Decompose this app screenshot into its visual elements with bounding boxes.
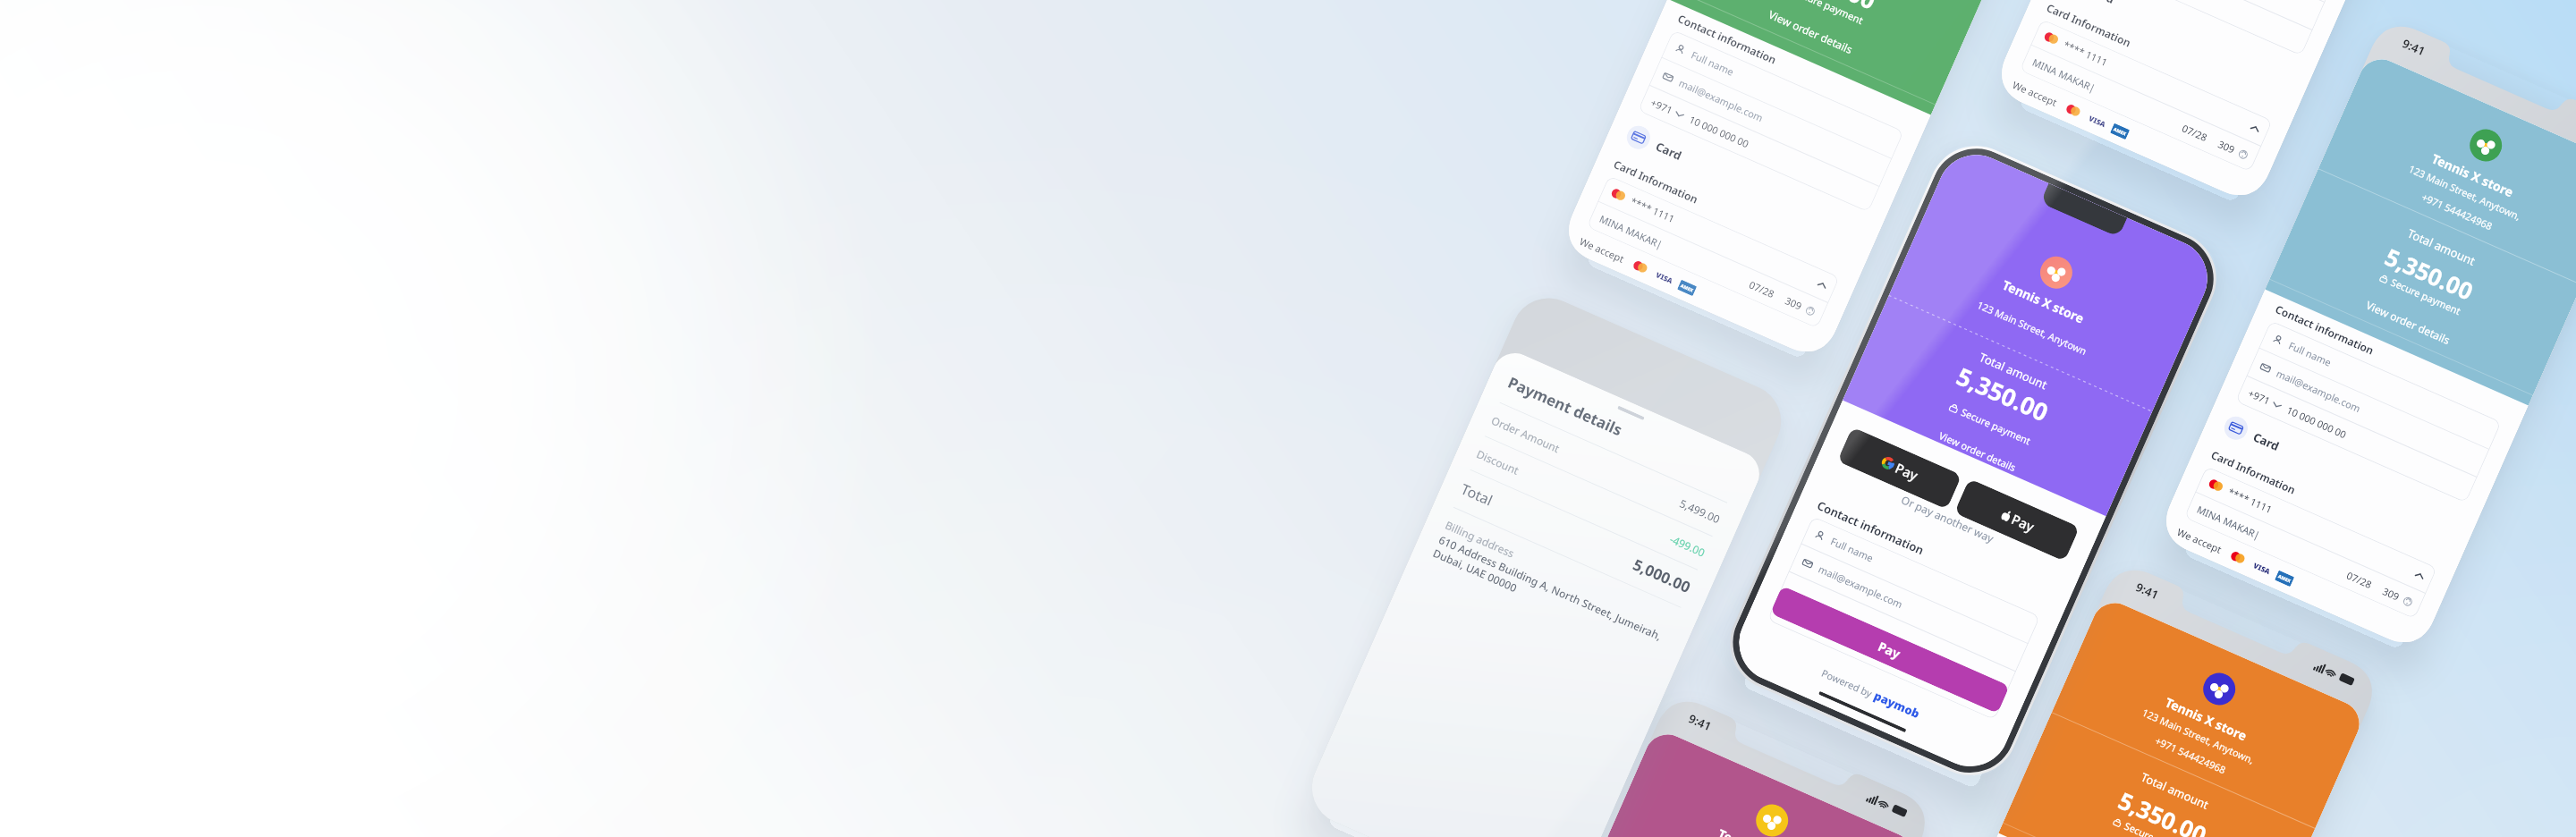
staticText: AMEX bbox=[2277, 573, 2292, 585]
staticText: Full name bbox=[2287, 338, 2334, 369]
staticText: VISA bbox=[2252, 560, 2272, 576]
staticText: mail@example.com bbox=[1817, 562, 1905, 611]
button[interactable]: Pay bbox=[1954, 478, 2080, 561]
staticText: 5,350.00 bbox=[2380, 240, 2478, 307]
staticText: Pay bbox=[1876, 638, 1904, 663]
staticText: Billing address bbox=[1443, 517, 1517, 561]
staticText: AMEX bbox=[1679, 283, 1694, 294]
staticText: 123 Main Street, Anytown, bbox=[2140, 705, 2257, 767]
staticText: Secure payment bbox=[1959, 405, 2033, 448]
staticText: 5,499.00 bbox=[1678, 496, 1723, 526]
staticText: Pay bbox=[2009, 510, 2037, 536]
staticText: 309 bbox=[2216, 137, 2237, 156]
staticText: mail@example.com bbox=[1677, 76, 1766, 125]
staticText: -499.00 bbox=[1668, 531, 1708, 560]
staticText: Tennis X store bbox=[2163, 693, 2250, 744]
staticText: We accept bbox=[2011, 78, 2059, 109]
staticText: Full name bbox=[1689, 48, 1736, 79]
staticText: mail@example.com bbox=[2274, 366, 2363, 415]
staticText: **** 1111 bbox=[2062, 38, 2110, 69]
staticText: Card Information bbox=[2045, 0, 2134, 50]
staticText: 5,350.00 bbox=[2114, 784, 2212, 837]
staticText: 07/28 bbox=[2345, 568, 2375, 591]
staticText: Total amount bbox=[2139, 769, 2211, 813]
staticText: Tennis X store bbox=[2000, 276, 2087, 327]
staticText: Total amount bbox=[1977, 349, 2050, 393]
staticText: Card bbox=[1653, 138, 1684, 164]
staticText: Tennis X store bbox=[1715, 825, 1802, 837]
staticText: +971 544424968 bbox=[2153, 734, 2228, 777]
staticText: Contact information bbox=[1676, 11, 1779, 67]
staticText: Pay bbox=[1893, 459, 1921, 484]
staticText: Contact information bbox=[2273, 302, 2376, 358]
staticText: Secure payment bbox=[2122, 819, 2197, 837]
staticText: 9:41 bbox=[1686, 710, 1714, 734]
staticText: 309 bbox=[2381, 584, 2402, 603]
staticText: 5,350.00 bbox=[1952, 359, 2053, 429]
staticText: Card bbox=[2251, 429, 2282, 454]
staticText: Card bbox=[2086, 0, 2117, 7]
staticText: MINA MAKAR| bbox=[2195, 502, 2262, 542]
staticText: 5,000.00 bbox=[1630, 554, 1694, 597]
staticText: View order details bbox=[1767, 7, 1855, 56]
staticText: +971 544424968 bbox=[2420, 190, 2495, 233]
staticText: +971 bbox=[1649, 96, 1675, 117]
staticText: We accept bbox=[2175, 525, 2224, 556]
staticText: Total bbox=[1458, 479, 1496, 510]
staticText: VISA bbox=[1655, 269, 1675, 286]
staticText: View order details bbox=[2364, 298, 2453, 347]
staticText: Full name bbox=[1829, 534, 1876, 565]
staticText: AMEX bbox=[2112, 126, 2127, 137]
staticText: 5,350.00 bbox=[1783, 0, 1881, 16]
staticText: 123 Main Street, Anytown bbox=[1975, 298, 2089, 358]
staticText: Contact information bbox=[1815, 497, 1927, 558]
staticText: Payment details bbox=[1505, 372, 1626, 440]
staticText: 610 Address Building A, North Street, Ju… bbox=[1437, 532, 1664, 643]
staticText: Secure payment bbox=[2389, 275, 2463, 318]
staticText: 07/28 bbox=[2180, 121, 2210, 144]
staticText: 10 000 000 00 bbox=[1687, 112, 1751, 151]
staticText: Discount bbox=[1475, 446, 1521, 477]
staticText: **** 1111 bbox=[1629, 194, 1677, 226]
staticText: **** 1111 bbox=[2226, 485, 2275, 516]
staticText: VISA bbox=[2087, 113, 2108, 129]
staticText: 309 bbox=[1783, 294, 1804, 313]
staticText: Tennis X store bbox=[2429, 150, 2516, 201]
staticText: 9:41 bbox=[2133, 579, 2161, 603]
button[interactable]: Pay bbox=[1837, 427, 1962, 510]
button[interactable]: Pay bbox=[1770, 586, 2010, 714]
staticText: Or pay another way bbox=[1813, 454, 2082, 583]
staticText: Powered by bbox=[1820, 666, 1877, 701]
staticText: Total amount bbox=[2405, 225, 2478, 269]
staticText: +971 bbox=[2246, 386, 2273, 408]
staticText: View order details bbox=[1937, 429, 2018, 474]
staticText: Dubai, UAE 00000 bbox=[1431, 545, 1519, 595]
staticText: 10 000 000 00 bbox=[2285, 403, 2349, 441]
staticText: Card Information bbox=[2209, 447, 2298, 497]
staticText: MINA MAKAR| bbox=[2030, 55, 2098, 95]
staticText: We accept bbox=[1578, 234, 1626, 266]
staticText: 123 Main Street, Anytown, bbox=[2407, 162, 2523, 223]
staticText: MINA MAKAR| bbox=[1597, 212, 1665, 251]
staticText: Card Information bbox=[1612, 156, 1701, 206]
staticText: 9:41 bbox=[2400, 35, 2428, 59]
staticText: 07/28 bbox=[1747, 278, 1777, 301]
staticText: paymob bbox=[1872, 687, 1923, 722]
staticText: Order Amount bbox=[1489, 413, 1562, 455]
staticText: Secure payment bbox=[1791, 0, 1866, 27]
